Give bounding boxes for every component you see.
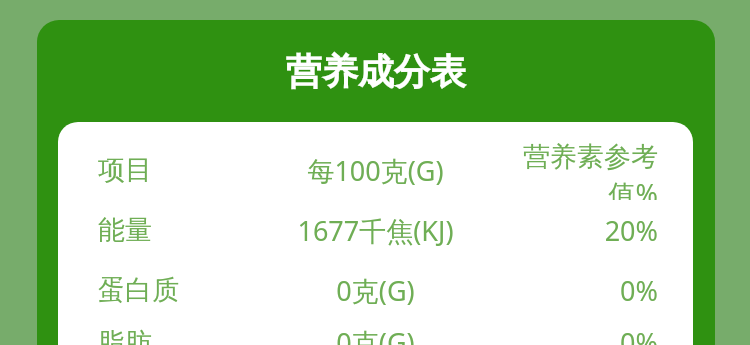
button[interactable]: 能量 bbox=[58, 200, 693, 260]
staticText: 蛋白质 bbox=[98, 273, 179, 307]
button[interactable]: 蛋白质 bbox=[58, 260, 693, 320]
staticText: 每100克(G) bbox=[307, 152, 444, 189]
staticText: 1677千焦(KJ) bbox=[297, 212, 454, 249]
staticText: 0% bbox=[620, 324, 658, 345]
button[interactable]: 脂肪 bbox=[58, 320, 693, 345]
staticText: 脂肪 bbox=[98, 326, 152, 345]
staticText: 营养成分表 bbox=[286, 49, 466, 94]
staticText: 营养素参考值% bbox=[480, 140, 658, 200]
staticText: 项目 bbox=[98, 153, 152, 187]
staticText: 能量 bbox=[98, 213, 152, 247]
staticText: 20% bbox=[604, 212, 658, 249]
staticText: 0克(G) bbox=[336, 324, 415, 345]
staticText: 0% bbox=[620, 272, 658, 309]
staticText: 0克(G) bbox=[336, 272, 415, 309]
button[interactable]: 项目 bbox=[58, 140, 693, 200]
